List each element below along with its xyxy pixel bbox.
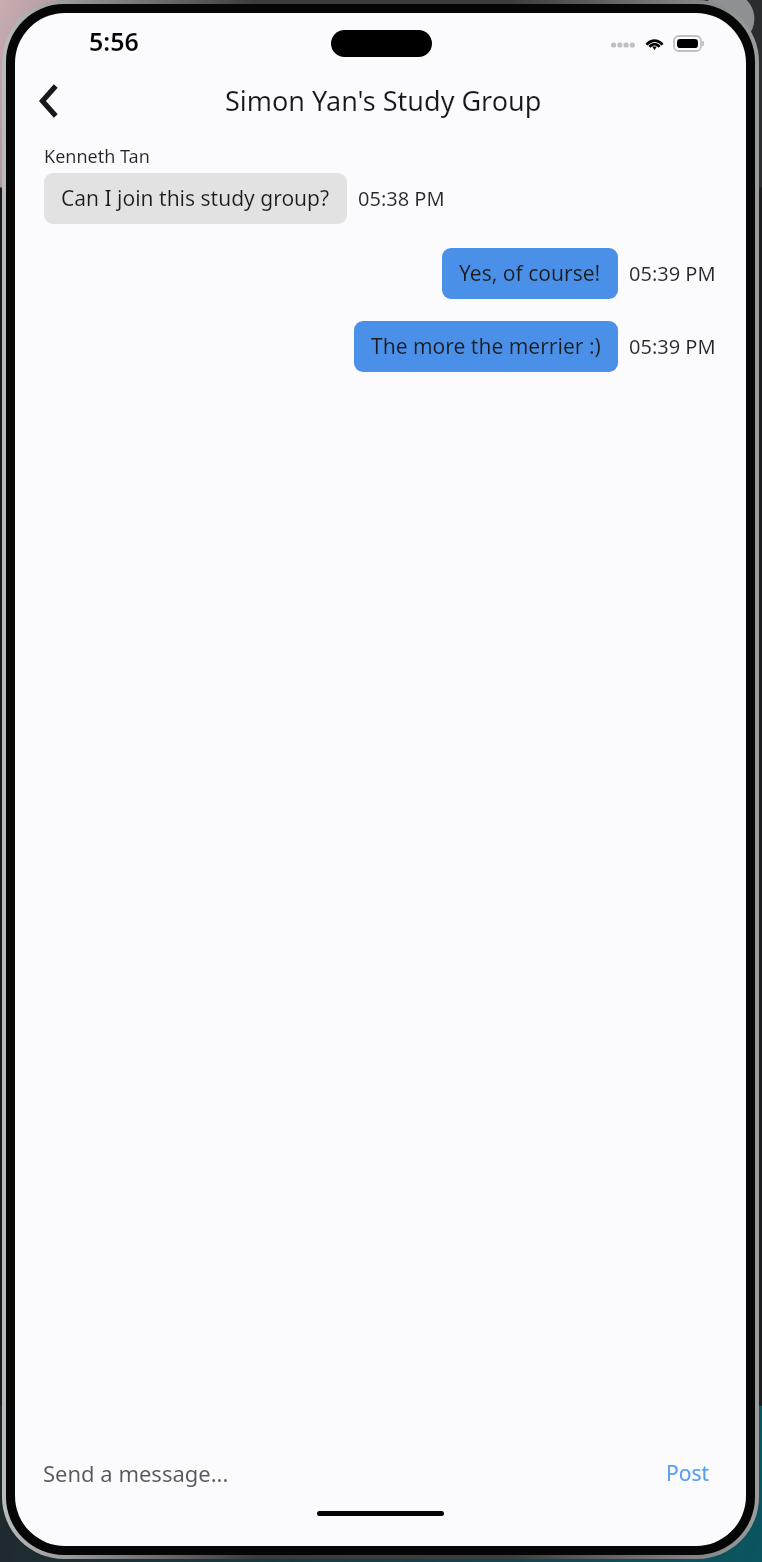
staticText: 05:38 PM (358, 185, 445, 212)
staticText: Can I join this study group? (61, 184, 330, 213)
staticText: 05:39 PM (629, 333, 716, 360)
staticText: Kenneth Tan (44, 144, 150, 169)
staticText: The more the merrier :) (371, 332, 601, 361)
staticText: Simon Yan's Study Group (225, 82, 542, 119)
staticText: 05:39 PM (629, 260, 716, 287)
button[interactable]: Back (27, 78, 73, 124)
staticText: Post (666, 1459, 710, 1488)
button[interactable]: The more the merrier :) (354, 321, 618, 372)
staticText: Yes, of course! (459, 259, 601, 288)
button[interactable]: Send a message... (43, 1458, 660, 1488)
button[interactable]: Post (660, 1453, 716, 1494)
button[interactable]: Can I join this study group? (44, 173, 347, 224)
staticText: Send a message... (43, 1458, 229, 1488)
staticText: 5:56 (89, 24, 139, 58)
button[interactable]: Yes, of course! (442, 248, 618, 299)
